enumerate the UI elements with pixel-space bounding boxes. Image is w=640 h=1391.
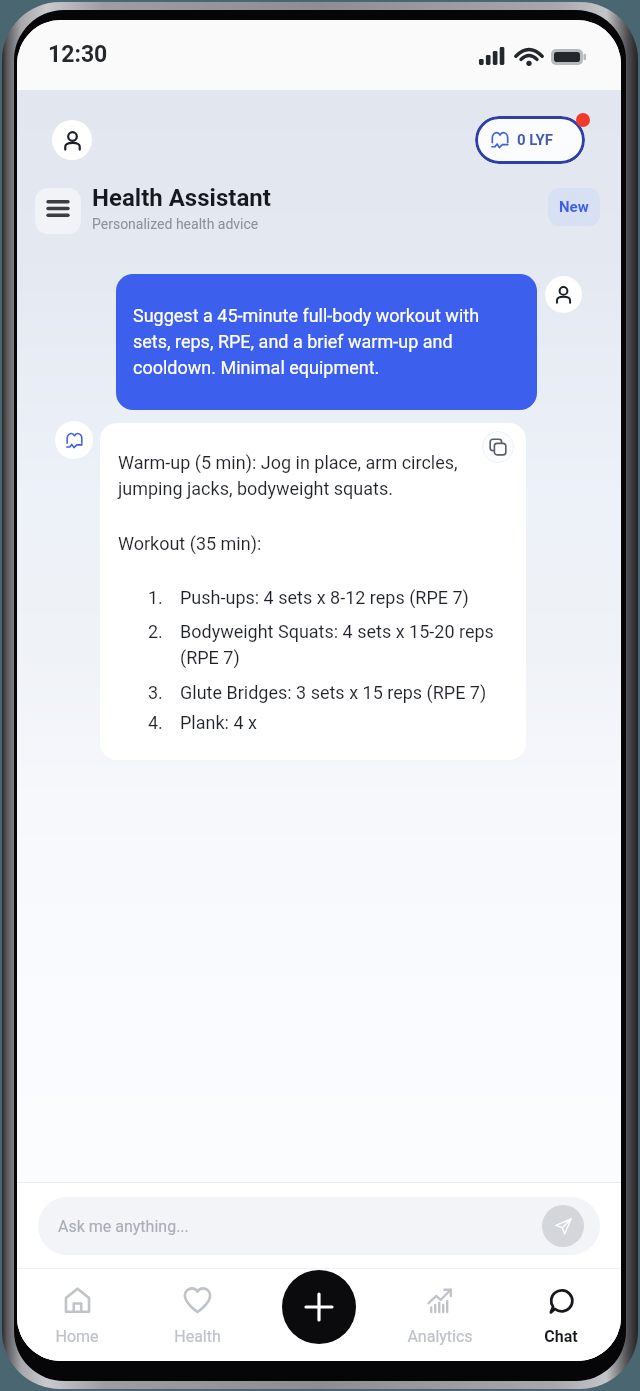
staticText: Ask me anything... [58, 1217, 542, 1236]
button[interactable]: Home [17, 1268, 137, 1346]
staticText: New [559, 198, 589, 216]
button[interactable]: Profile [52, 120, 92, 160]
staticText: Health Assistant [92, 184, 271, 212]
staticText: Bodyweight Squats: 4 sets x 15-20 reps (… [180, 621, 502, 669]
staticText: 4. [148, 712, 163, 733]
button[interactable]: Menu [35, 188, 81, 234]
staticText: Personalized health advice [92, 216, 259, 232]
staticText: Analytics [407, 1327, 473, 1346]
staticText: Health [174, 1327, 221, 1346]
staticText: Push-ups: 4 sets x 8-12 reps (RPE 7) [180, 587, 502, 608]
button[interactable]: Chat [500, 1268, 621, 1346]
button[interactable]: Ask me anything... [38, 1197, 600, 1255]
button[interactable]: New [548, 188, 600, 226]
staticText: Plank: 4 x [180, 712, 502, 733]
button[interactable]: Copy [482, 431, 514, 463]
staticText: Suggest a 45-minute full-body workout wi… [133, 305, 493, 378]
staticText: Warm-up (5 min): Jog in place, arm circl… [118, 452, 478, 500]
staticText: Workout (35 min): [118, 533, 262, 554]
button[interactable]: 0 LYF [475, 116, 585, 164]
button[interactable]: Health [137, 1268, 258, 1346]
staticText: 0 LYF [517, 131, 553, 149]
staticText: 1. [148, 587, 163, 608]
staticText: Home [55, 1327, 99, 1346]
staticText: 12:30 [48, 41, 108, 68]
staticText: Chat [544, 1327, 578, 1346]
button[interactable]: Analytics [379, 1268, 500, 1346]
staticText: 3. [148, 682, 163, 703]
button[interactable]: Add [282, 1270, 356, 1344]
staticText: Glute Bridges: 3 sets x 15 reps (RPE 7) [180, 682, 502, 703]
button[interactable]: Send [542, 1205, 584, 1247]
staticText: 2. [148, 621, 163, 642]
